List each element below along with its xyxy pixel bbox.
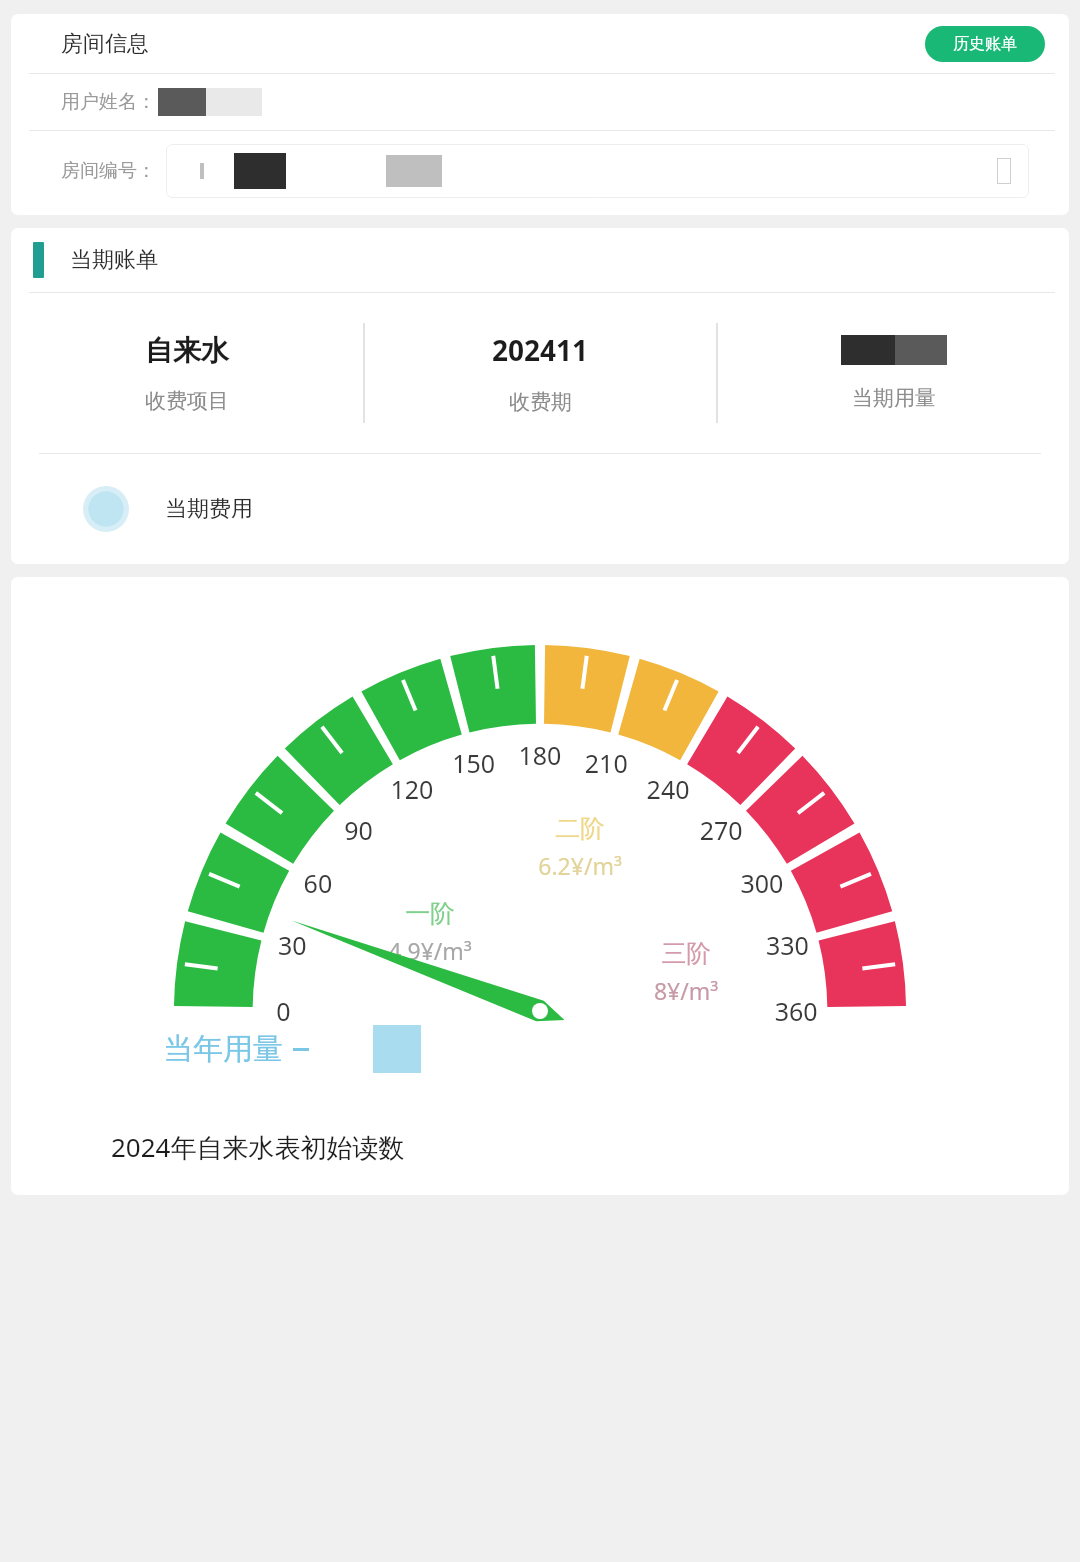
button[interactable]: 当期费用 bbox=[11, 454, 1069, 564]
button[interactable]: 历史账单 bbox=[925, 26, 1045, 62]
button[interactable]: 当期用量 bbox=[718, 335, 1069, 411]
staticText: 收费项目 bbox=[145, 388, 229, 414]
staticText: 202411 bbox=[492, 331, 589, 369]
staticText: 当期费用 bbox=[165, 495, 253, 523]
staticText: 历史账单 bbox=[953, 34, 1017, 54]
button[interactable]: 房间编号： bbox=[11, 131, 1069, 211]
staticText: 房间信息 bbox=[61, 30, 149, 58]
staticText: 当年用量 bbox=[163, 1030, 283, 1068]
button[interactable]: 自来水 bbox=[11, 333, 363, 414]
staticText: 当期账单 bbox=[70, 246, 158, 274]
staticText: 自来水 bbox=[145, 333, 229, 368]
button[interactable]: 202411 bbox=[365, 331, 716, 415]
staticText: 用户姓名： bbox=[61, 90, 156, 114]
staticText: 2024年自来水表初始读数 bbox=[111, 1129, 405, 1165]
staticText: 房间编号： bbox=[61, 159, 156, 183]
button[interactable]: 用户姓名： bbox=[11, 74, 1069, 130]
staticText: 收费期 bbox=[509, 389, 572, 415]
staticText: 当期用量 bbox=[852, 385, 936, 411]
